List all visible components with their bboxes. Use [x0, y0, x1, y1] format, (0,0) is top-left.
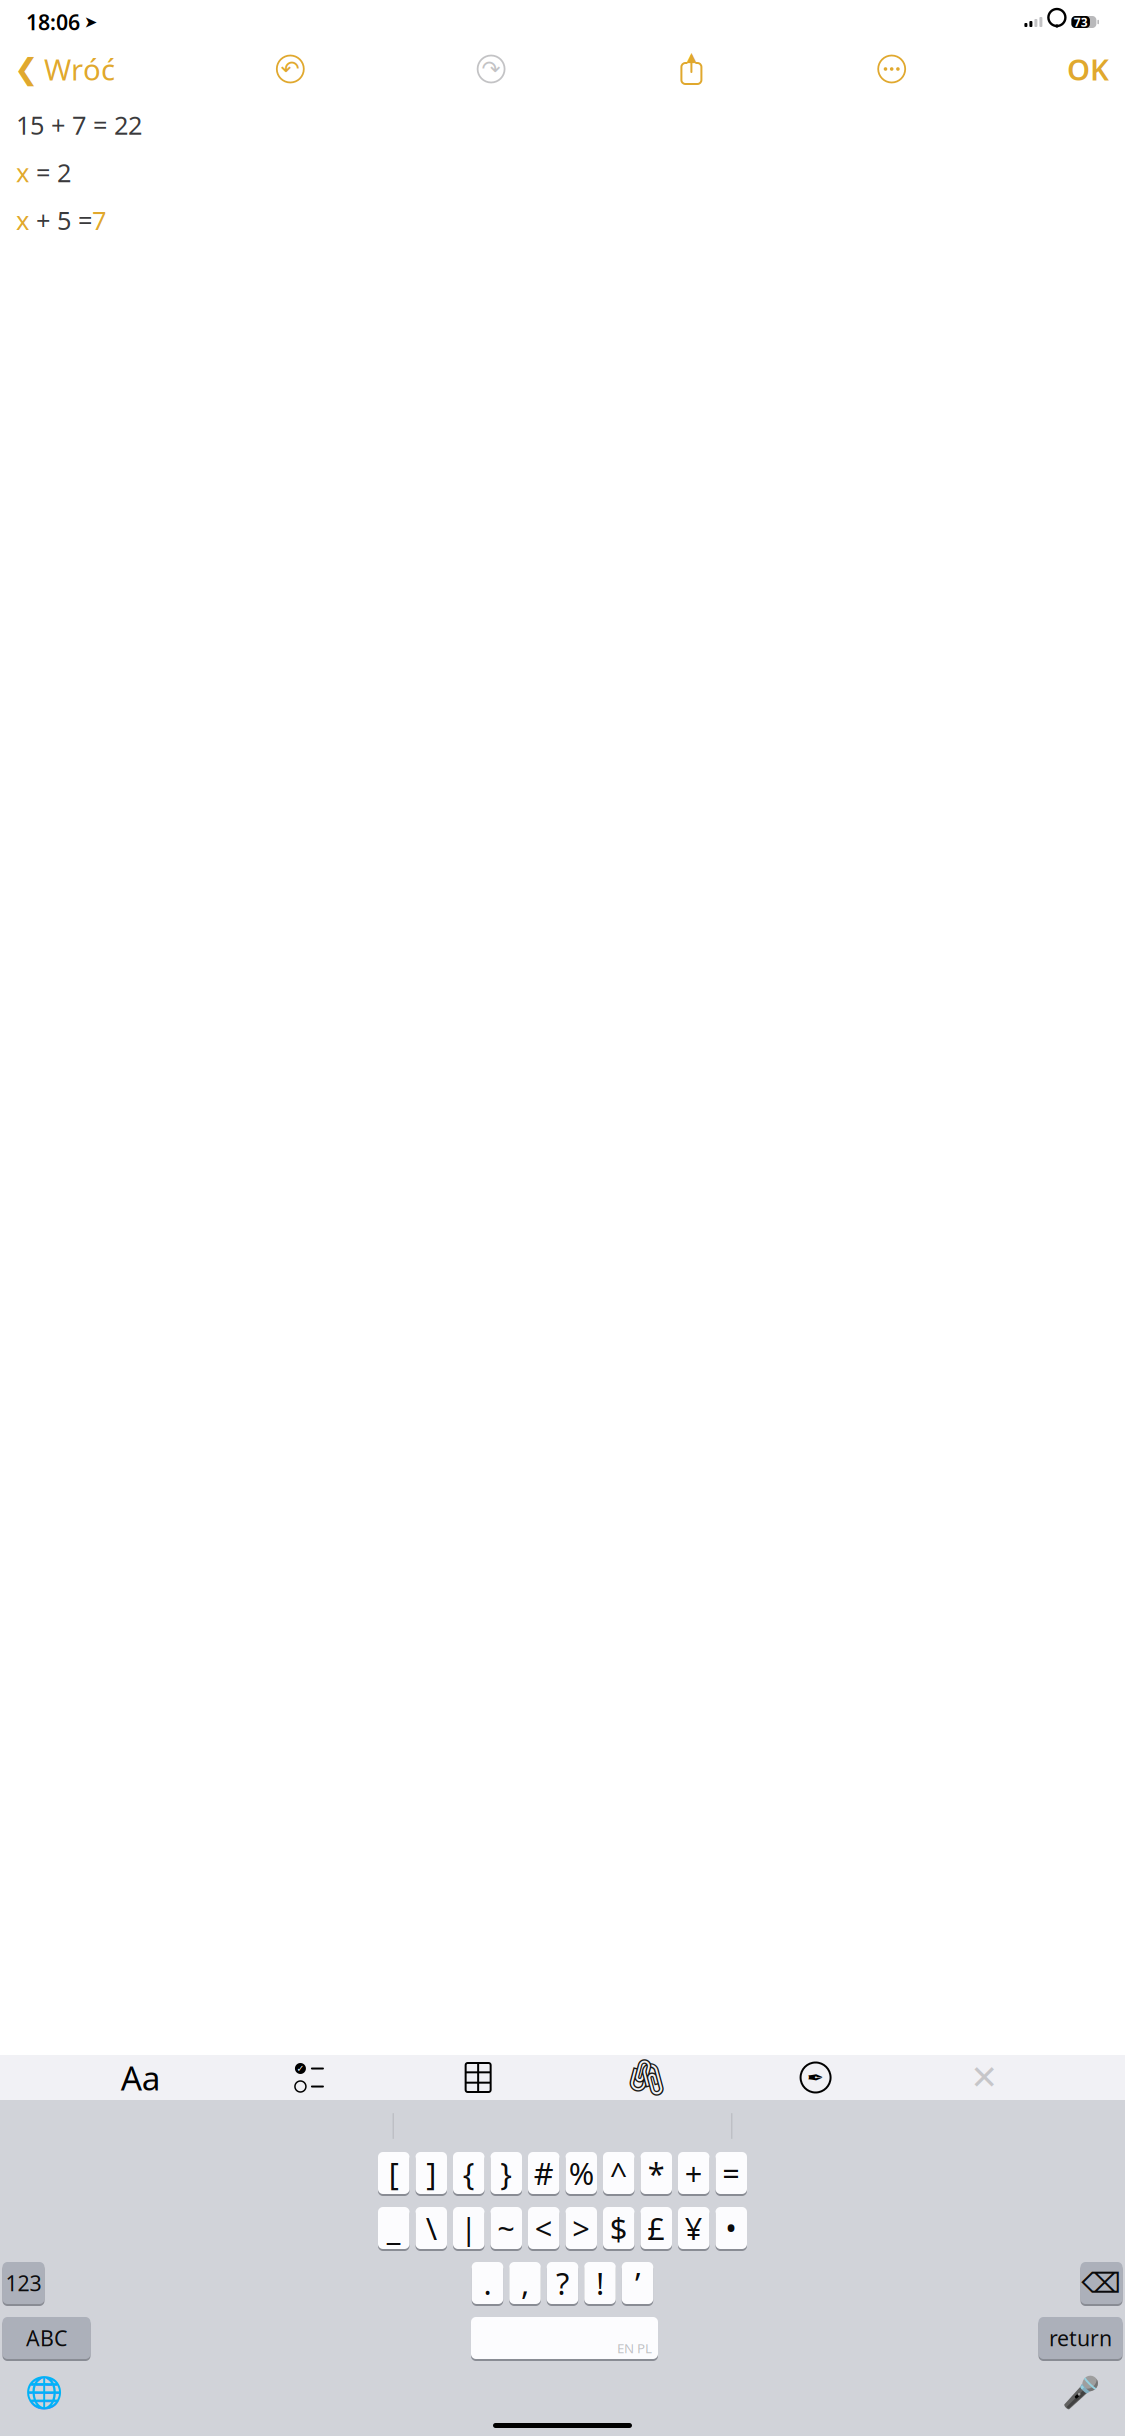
button[interactable]: ! [584, 2262, 616, 2306]
button[interactable]: } [490, 2152, 522, 2196]
button[interactable]: [ [378, 2152, 409, 2196]
staticText: % [569, 2153, 594, 2193]
button[interactable]: # [528, 2152, 559, 2196]
button[interactable]: ’ [622, 2262, 653, 2306]
button[interactable]: = [715, 2152, 747, 2196]
staticText: ▲ [686, 49, 696, 64]
staticText: ’ [635, 2263, 640, 2303]
button[interactable]: £ [640, 2207, 672, 2251]
staticText: • [725, 2208, 737, 2248]
button[interactable]: ¥ [678, 2207, 709, 2251]
button[interactable]: • [715, 2207, 747, 2251]
staticText: > [572, 2208, 590, 2248]
button[interactable]: More [866, 47, 917, 90]
staticText: _ [387, 2208, 401, 2248]
staticText: ✒ [807, 2066, 824, 2089]
staticText: { [463, 2153, 475, 2193]
button[interactable]: < [528, 2207, 559, 2251]
button[interactable]: Markup [788, 2055, 844, 2099]
button[interactable]: { [453, 2152, 484, 2196]
staticText: ➤ [84, 13, 97, 31]
staticText: } [500, 2153, 512, 2193]
staticText: $ [610, 2208, 628, 2248]
button[interactable]: ^ [603, 2152, 634, 2196]
staticText: 7 [92, 203, 106, 237]
staticText: x [16, 156, 29, 189]
button[interactable]: % [565, 2152, 597, 2196]
staticText: ? [556, 2263, 569, 2303]
staticText: 15 + 7 = 22 [16, 108, 142, 142]
staticText: x [16, 203, 29, 237]
button[interactable]: 123 [2, 2262, 44, 2306]
staticText: + 5 = [29, 203, 92, 237]
staticText: [ [389, 2153, 399, 2193]
staticText: ^ [610, 2153, 628, 2193]
staticText: + [685, 2153, 703, 2193]
button[interactable]: * [640, 2152, 672, 2196]
button[interactable]: Checklist [281, 2055, 337, 2099]
button[interactable]: ~ [490, 2207, 522, 2251]
staticText: , [521, 2263, 529, 2303]
staticText: Wróć [44, 49, 115, 88]
staticText: 🎤 [1062, 2375, 1100, 2410]
staticText: 123 [5, 2269, 41, 2297]
staticText: ] [426, 2153, 436, 2193]
staticText: ¥ [685, 2208, 703, 2248]
button[interactable]: Delete [1080, 2262, 1122, 2306]
staticText: | [460, 2208, 477, 2248]
staticText: ↶ [281, 56, 300, 82]
button[interactable]: , [509, 2262, 541, 2306]
staticText: . [483, 2263, 491, 2303]
staticText: 🖇 [624, 2057, 670, 2098]
button[interactable]: > [565, 2207, 597, 2251]
button[interactable]: Close keyboard [956, 2055, 1012, 2099]
staticText: ~ [497, 2208, 515, 2248]
button[interactable]: . [472, 2262, 503, 2306]
button[interactable]: Undo [265, 47, 316, 90]
button[interactable]: | [453, 2207, 484, 2251]
staticText: 18:06 [26, 8, 80, 36]
staticText: ✕ [970, 2059, 998, 2096]
staticText: ↷ [482, 56, 501, 82]
staticText: = [722, 2153, 740, 2193]
staticText: ⌫ [1081, 2267, 1121, 2299]
button[interactable]: return [1038, 2317, 1122, 2361]
staticText: ❮ [14, 52, 39, 86]
staticText: 73 [1074, 14, 1088, 30]
staticText: Aa [121, 2055, 161, 2100]
button[interactable]: Text format [113, 2055, 169, 2099]
staticText: £ [647, 2208, 665, 2248]
button[interactable]: Table [450, 2055, 506, 2099]
button[interactable]: Attach [619, 2055, 675, 2099]
button[interactable]: \ [415, 2207, 447, 2251]
staticText: ABC [26, 2324, 67, 2352]
button[interactable]: Next keyboard [22, 2373, 66, 2413]
button[interactable]: OK [1067, 43, 1125, 94]
button[interactable]: $ [603, 2207, 634, 2251]
button[interactable]: ] [415, 2152, 447, 2196]
button[interactable]: Share [666, 47, 716, 91]
button[interactable]: ABC [2, 2317, 90, 2361]
staticText: 🌐 [25, 2375, 63, 2410]
button[interactable]: ❮ [0, 43, 115, 94]
button[interactable]: Redo [466, 47, 517, 90]
button[interactable]: _ [378, 2207, 409, 2251]
staticText: OK [1067, 49, 1109, 88]
staticText: # [534, 2153, 554, 2193]
staticText: ✓ [296, 2063, 304, 2074]
button[interactable]: + [678, 2152, 709, 2196]
staticText: = 2 [29, 156, 71, 189]
staticText: \ [426, 2208, 437, 2248]
staticText: < [535, 2208, 553, 2248]
staticText: ! [596, 2263, 604, 2303]
staticText: * [648, 2153, 665, 2193]
button[interactable]: Space [471, 2317, 658, 2361]
button[interactable]: Dictation [1059, 2373, 1103, 2413]
staticText: return [1049, 2324, 1112, 2352]
button[interactable]: ? [547, 2262, 578, 2306]
staticText: EN PL [617, 2339, 652, 2357]
